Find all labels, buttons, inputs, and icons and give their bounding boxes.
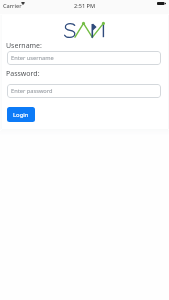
staticText: Enter username bbox=[11, 54, 54, 62]
other: Battery bbox=[157, 2, 166, 5]
other: Wi-Fi signal bbox=[21, 2, 25, 5]
staticText: 2:51 PM bbox=[74, 2, 96, 10]
staticText: Login bbox=[13, 111, 29, 119]
staticText: Carrier bbox=[3, 2, 22, 10]
button[interactable]: Enter password bbox=[7, 84, 161, 98]
staticText: Username: bbox=[6, 41, 42, 51]
staticText: Enter password bbox=[11, 87, 53, 95]
staticText: Password: bbox=[6, 69, 40, 79]
button[interactable]: Login bbox=[7, 107, 35, 122]
button[interactable]: Enter username bbox=[7, 51, 161, 65]
